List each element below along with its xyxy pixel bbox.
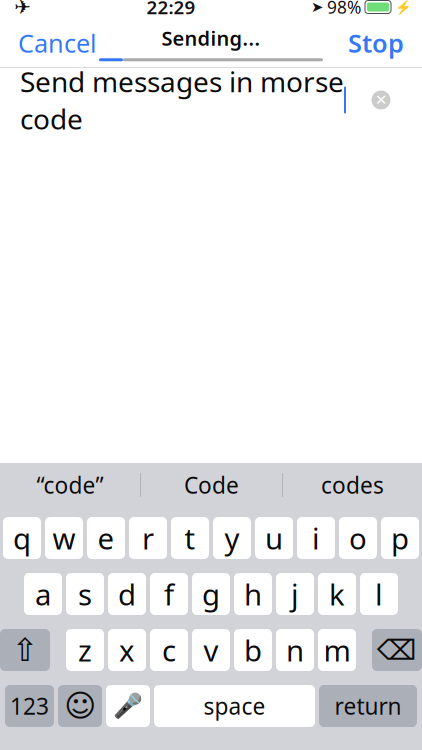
- staticText: ⚡: [395, 0, 412, 15]
- staticText: g: [202, 574, 220, 613]
- staticText: s: [78, 574, 92, 613]
- staticText: 🎤: [113, 692, 143, 720]
- staticText: t: [184, 518, 195, 557]
- button[interactable]: c: [150, 629, 188, 671]
- button[interactable]: Delete: [372, 629, 422, 671]
- staticText: x: [119, 630, 135, 669]
- button[interactable]: Shift: [0, 629, 50, 671]
- staticText: m: [323, 630, 350, 669]
- staticText: “code”: [36, 470, 103, 500]
- staticText: q: [13, 518, 31, 557]
- staticText: codes: [321, 470, 384, 500]
- staticText: e: [97, 518, 114, 557]
- staticText: return: [334, 691, 401, 721]
- button[interactable]: codes: [283, 464, 422, 506]
- staticText: z: [78, 630, 92, 669]
- staticText: o: [349, 518, 367, 557]
- staticText: b: [244, 630, 262, 669]
- staticText: v: [203, 630, 218, 669]
- staticText: j: [291, 574, 299, 613]
- button[interactable]: g: [192, 573, 230, 615]
- button[interactable]: h: [234, 573, 272, 615]
- button[interactable]: j: [276, 573, 314, 615]
- staticText: y: [224, 518, 239, 557]
- button[interactable]: return: [319, 685, 417, 727]
- staticText: Send messages in morse code: [20, 63, 344, 137]
- staticText: i: [312, 518, 320, 557]
- button[interactable]: t: [171, 517, 209, 559]
- button[interactable]: o: [339, 517, 377, 559]
- staticText: n: [286, 630, 304, 669]
- button[interactable]: i: [297, 517, 335, 559]
- button[interactable]: p: [381, 517, 419, 559]
- staticText: c: [162, 630, 176, 669]
- button[interactable]: u: [255, 517, 293, 559]
- button[interactable]: y: [213, 517, 251, 559]
- button[interactable]: Dictation: [106, 685, 150, 727]
- button[interactable]: Cancel: [0, 23, 115, 63]
- staticText: Sending...: [161, 25, 260, 51]
- staticText: k: [329, 574, 345, 613]
- button[interactable]: 123: [5, 685, 54, 727]
- button[interactable]: r: [129, 517, 167, 559]
- staticText: f: [164, 574, 174, 613]
- button[interactable]: s: [66, 573, 104, 615]
- button[interactable]: l: [360, 573, 398, 615]
- staticText: a: [35, 574, 51, 613]
- button[interactable]: f: [150, 573, 188, 615]
- button[interactable]: v: [192, 629, 230, 671]
- staticText: ⇧: [11, 632, 38, 668]
- staticText: ➤: [311, 0, 323, 15]
- staticText: Stop: [348, 26, 404, 60]
- button[interactable]: space: [154, 685, 315, 727]
- button[interactable]: b: [234, 629, 272, 671]
- button[interactable]: m: [318, 629, 356, 671]
- button[interactable]: k: [318, 573, 356, 615]
- button[interactable]: “code”: [0, 464, 140, 506]
- button[interactable]: Emoji: [58, 685, 102, 727]
- staticText: w: [52, 518, 75, 557]
- staticText: h: [244, 574, 262, 613]
- button[interactable]: Stop: [330, 23, 422, 63]
- staticText: ✕: [375, 92, 387, 108]
- staticText: ⌫: [377, 634, 417, 666]
- button[interactable]: w: [45, 517, 83, 559]
- staticText: 123: [10, 691, 49, 721]
- staticText: r: [142, 518, 154, 557]
- staticText: 98%: [327, 0, 361, 18]
- staticText: ✈: [14, 0, 31, 18]
- button[interactable]: q: [3, 517, 41, 559]
- staticText: l: [375, 574, 383, 613]
- button[interactable]: x: [108, 629, 146, 671]
- staticText: d: [118, 574, 136, 613]
- button[interactable]: n: [276, 629, 314, 671]
- button[interactable]: z: [66, 629, 104, 671]
- staticText: Cancel: [18, 26, 97, 60]
- button[interactable]: a: [24, 573, 62, 615]
- staticText: space: [203, 691, 265, 721]
- staticText: 22:29: [146, 0, 195, 19]
- staticText: ☺: [64, 689, 96, 723]
- staticText: p: [391, 518, 409, 557]
- staticText: Code: [184, 470, 239, 500]
- button[interactable]: e: [87, 517, 125, 559]
- button[interactable]: d: [108, 573, 146, 615]
- button[interactable]: Clear text: [364, 83, 398, 117]
- staticText: u: [265, 518, 283, 557]
- button[interactable]: Code: [141, 464, 282, 506]
